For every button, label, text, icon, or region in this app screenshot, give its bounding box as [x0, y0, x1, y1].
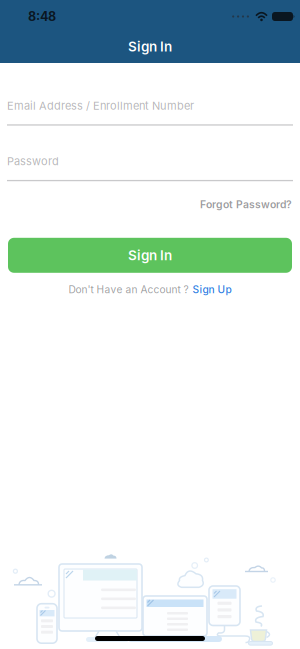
staticText: Sign In — [128, 247, 172, 263]
staticText: 8:48 — [28, 9, 56, 24]
button[interactable]: Sign Up — [192, 283, 231, 296]
button[interactable]: Sign In — [8, 238, 292, 273]
button[interactable]: Password text field — [7, 155, 293, 181]
staticText: Sign Up — [192, 283, 231, 296]
staticText: Password — [7, 155, 59, 168]
button[interactable]: Email Address / Enrollment Number text f… — [7, 99, 293, 126]
staticText: Forgot Password? — [200, 198, 292, 211]
button[interactable]: Forgot Password? — [200, 198, 292, 211]
staticText: Don't Have an Account ? — [68, 283, 188, 296]
staticText: Email Address / Enrollment Number — [7, 99, 194, 112]
staticText: Sign In — [128, 38, 172, 55]
